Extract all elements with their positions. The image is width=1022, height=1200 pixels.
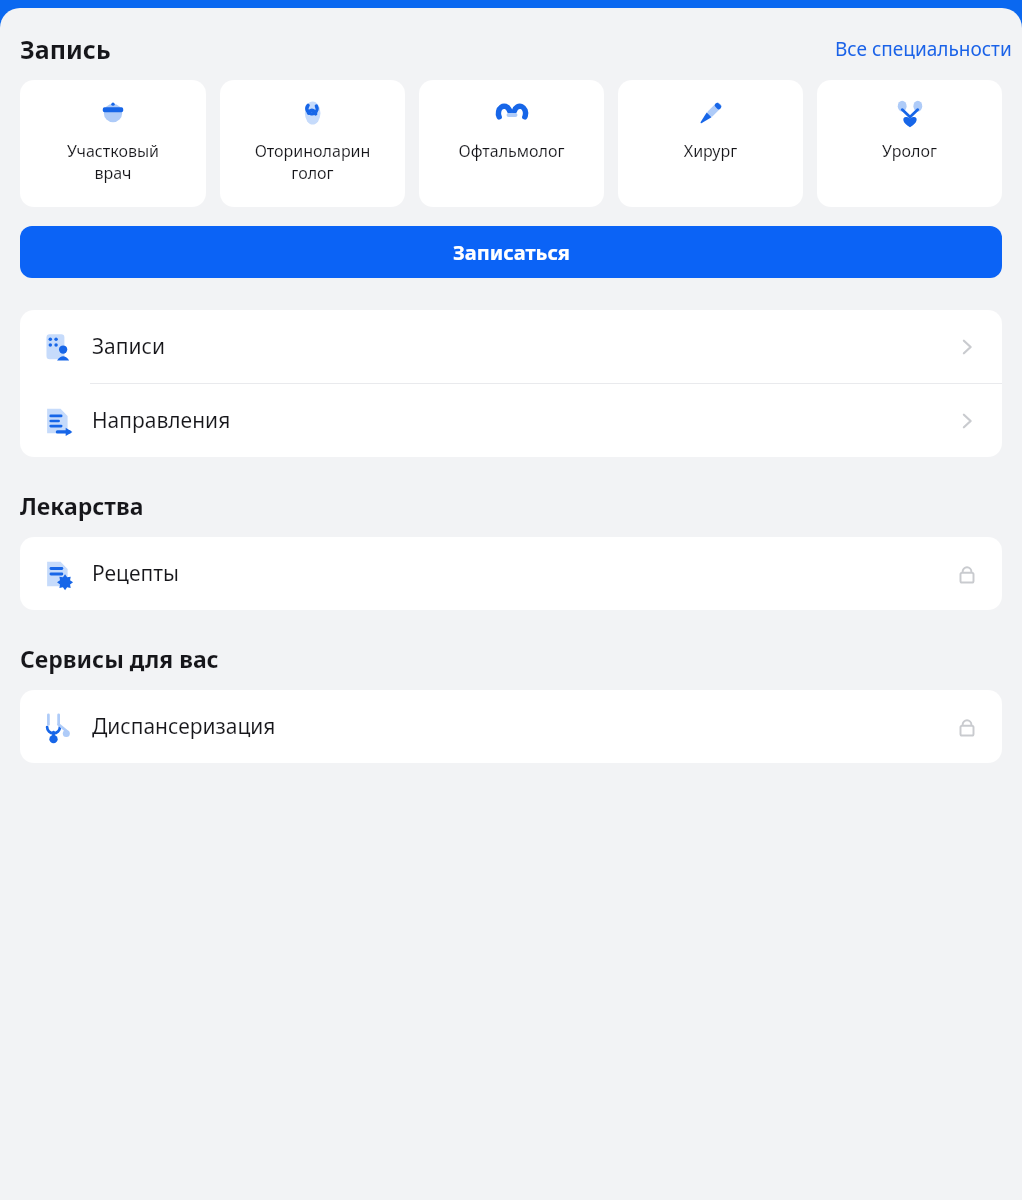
staticText: Записи [92,332,165,361]
staticText: Все специальности [835,36,1012,62]
staticText: Уролог [821,140,998,162]
staticText: Сервисы для вас [20,643,219,674]
staticText: Записаться [453,239,570,266]
button[interactable]: Диспансеризация [20,690,1002,763]
button[interactable]: Все специальности [829,30,1018,68]
staticText: Диспансеризация [92,712,276,741]
button[interactable]: Хирург [618,80,803,207]
staticText: Лекарства [20,490,144,521]
button[interactable]: Записаться [20,226,1002,278]
button[interactable]: Уролог [817,80,1002,207]
button[interactable]: Рецепты [20,537,1002,610]
button[interactable]: Оториноларин голог [220,80,405,207]
button[interactable]: Записи [20,310,1002,383]
staticText: Участковый врач [24,140,202,184]
staticText: Направления [92,406,231,435]
button[interactable]: Офтальмолог [419,80,604,207]
staticText: Офтальмолог [423,140,600,162]
button[interactable]: Направления [20,384,1002,457]
staticText: Оториноларин голог [224,140,401,184]
staticText: Рецепты [92,559,179,588]
staticText: Запись [20,32,111,66]
button[interactable]: Участковый врач [20,80,206,207]
staticText: Хирург [622,140,799,162]
